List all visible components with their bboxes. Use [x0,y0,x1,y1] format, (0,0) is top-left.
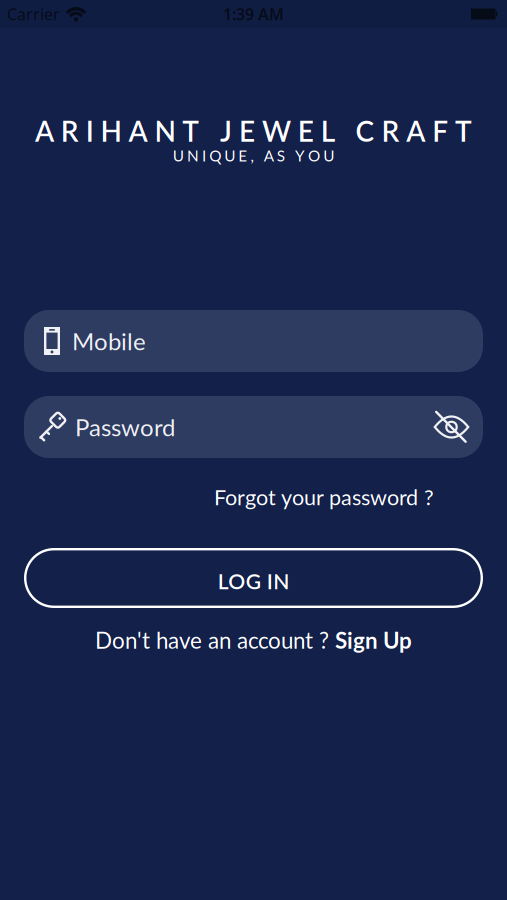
staticText: F [432,114,448,148]
button[interactable] [434,411,469,442]
staticText: L [321,114,335,148]
button[interactable]: Mobile [24,310,483,372]
staticText: O [308,146,320,165]
staticText: Sign Up [335,627,412,653]
staticText: I [202,146,206,165]
staticText: N [187,146,199,165]
staticText: S [277,146,285,165]
button[interactable]: Forgot your password ? [214,484,434,510]
staticText: , [250,146,253,165]
staticText: N [154,114,175,148]
staticText: R [381,114,399,148]
staticText: H [101,114,122,148]
staticText: LOG IN [218,568,289,594]
staticText: C [355,114,374,148]
staticText: W [262,114,291,148]
staticText: U [224,146,235,165]
staticText: Don't have an account ? [95,627,329,653]
staticText: Forgot your password ? [214,484,434,510]
staticText: J [220,114,232,148]
staticText: U [173,146,184,165]
staticText: R [61,114,79,148]
button[interactable]: LOG IN [24,548,483,608]
staticText: 1:39 AM [223,3,284,25]
staticText: Mobile [72,327,146,355]
staticText: Y [295,146,305,165]
staticText: Carrier [7,3,60,25]
staticText: Q [209,146,221,165]
staticText: Password [75,413,175,441]
staticText: E [239,114,255,148]
staticText: A [128,114,147,148]
button[interactable]: Password [24,396,483,458]
staticText: A [264,146,274,165]
staticText: U [323,146,334,165]
staticText: A [406,114,425,148]
button[interactable]: Sign Up [335,627,412,653]
staticText: T [182,114,199,148]
staticText: A [35,114,54,148]
staticText: E [298,114,314,148]
staticText: I [86,114,94,148]
staticText: E [238,146,247,165]
staticText: T [455,114,472,148]
